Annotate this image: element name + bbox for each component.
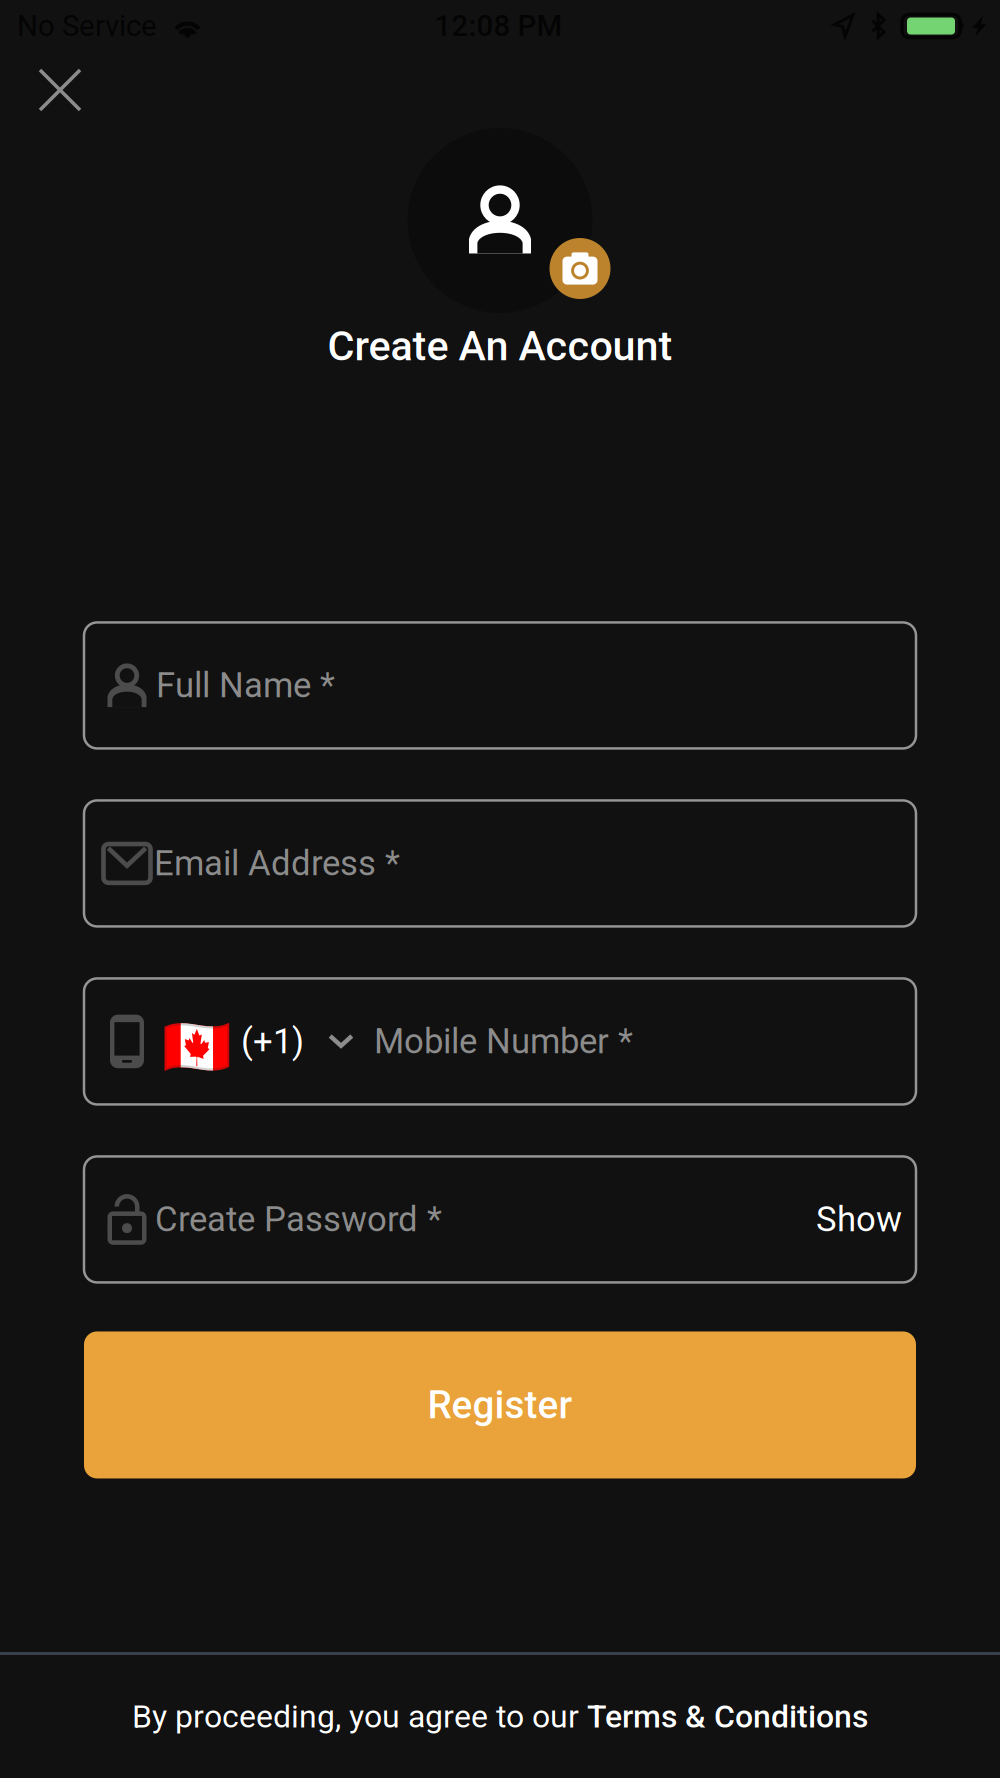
button[interactable]: Register — [84, 1331, 916, 1478]
button[interactable]: Show — [816, 1199, 902, 1240]
staticText: Email Address * — [154, 843, 400, 884]
staticText: Terms & Conditions — [587, 1698, 868, 1735]
button[interactable]: Full Name * — [84, 622, 916, 748]
button[interactable]: Close — [0, 46, 104, 134]
button[interactable]: 🇨🇦 — [84, 978, 916, 1104]
staticText: By proceeding, you agree to our — [132, 1698, 587, 1735]
staticText: 12:08 PM — [434, 9, 562, 43]
staticText: Mobile Number * — [374, 1021, 633, 1062]
staticText: Register — [427, 1382, 572, 1428]
button[interactable]: Email Address * — [84, 800, 916, 926]
button[interactable]: By proceeding, you agree to our — [0, 1655, 1000, 1778]
staticText: No Service — [17, 9, 157, 43]
staticText: (+1) — [241, 1021, 304, 1062]
staticText: Show — [816, 1199, 902, 1240]
button[interactable]: Change photo — [549, 238, 610, 299]
staticText: Full Name * — [156, 665, 335, 706]
staticText: Create Password * — [155, 1199, 442, 1240]
staticText: Create An Account — [327, 322, 672, 370]
staticText: 🇨🇦 — [162, 1014, 232, 1080]
